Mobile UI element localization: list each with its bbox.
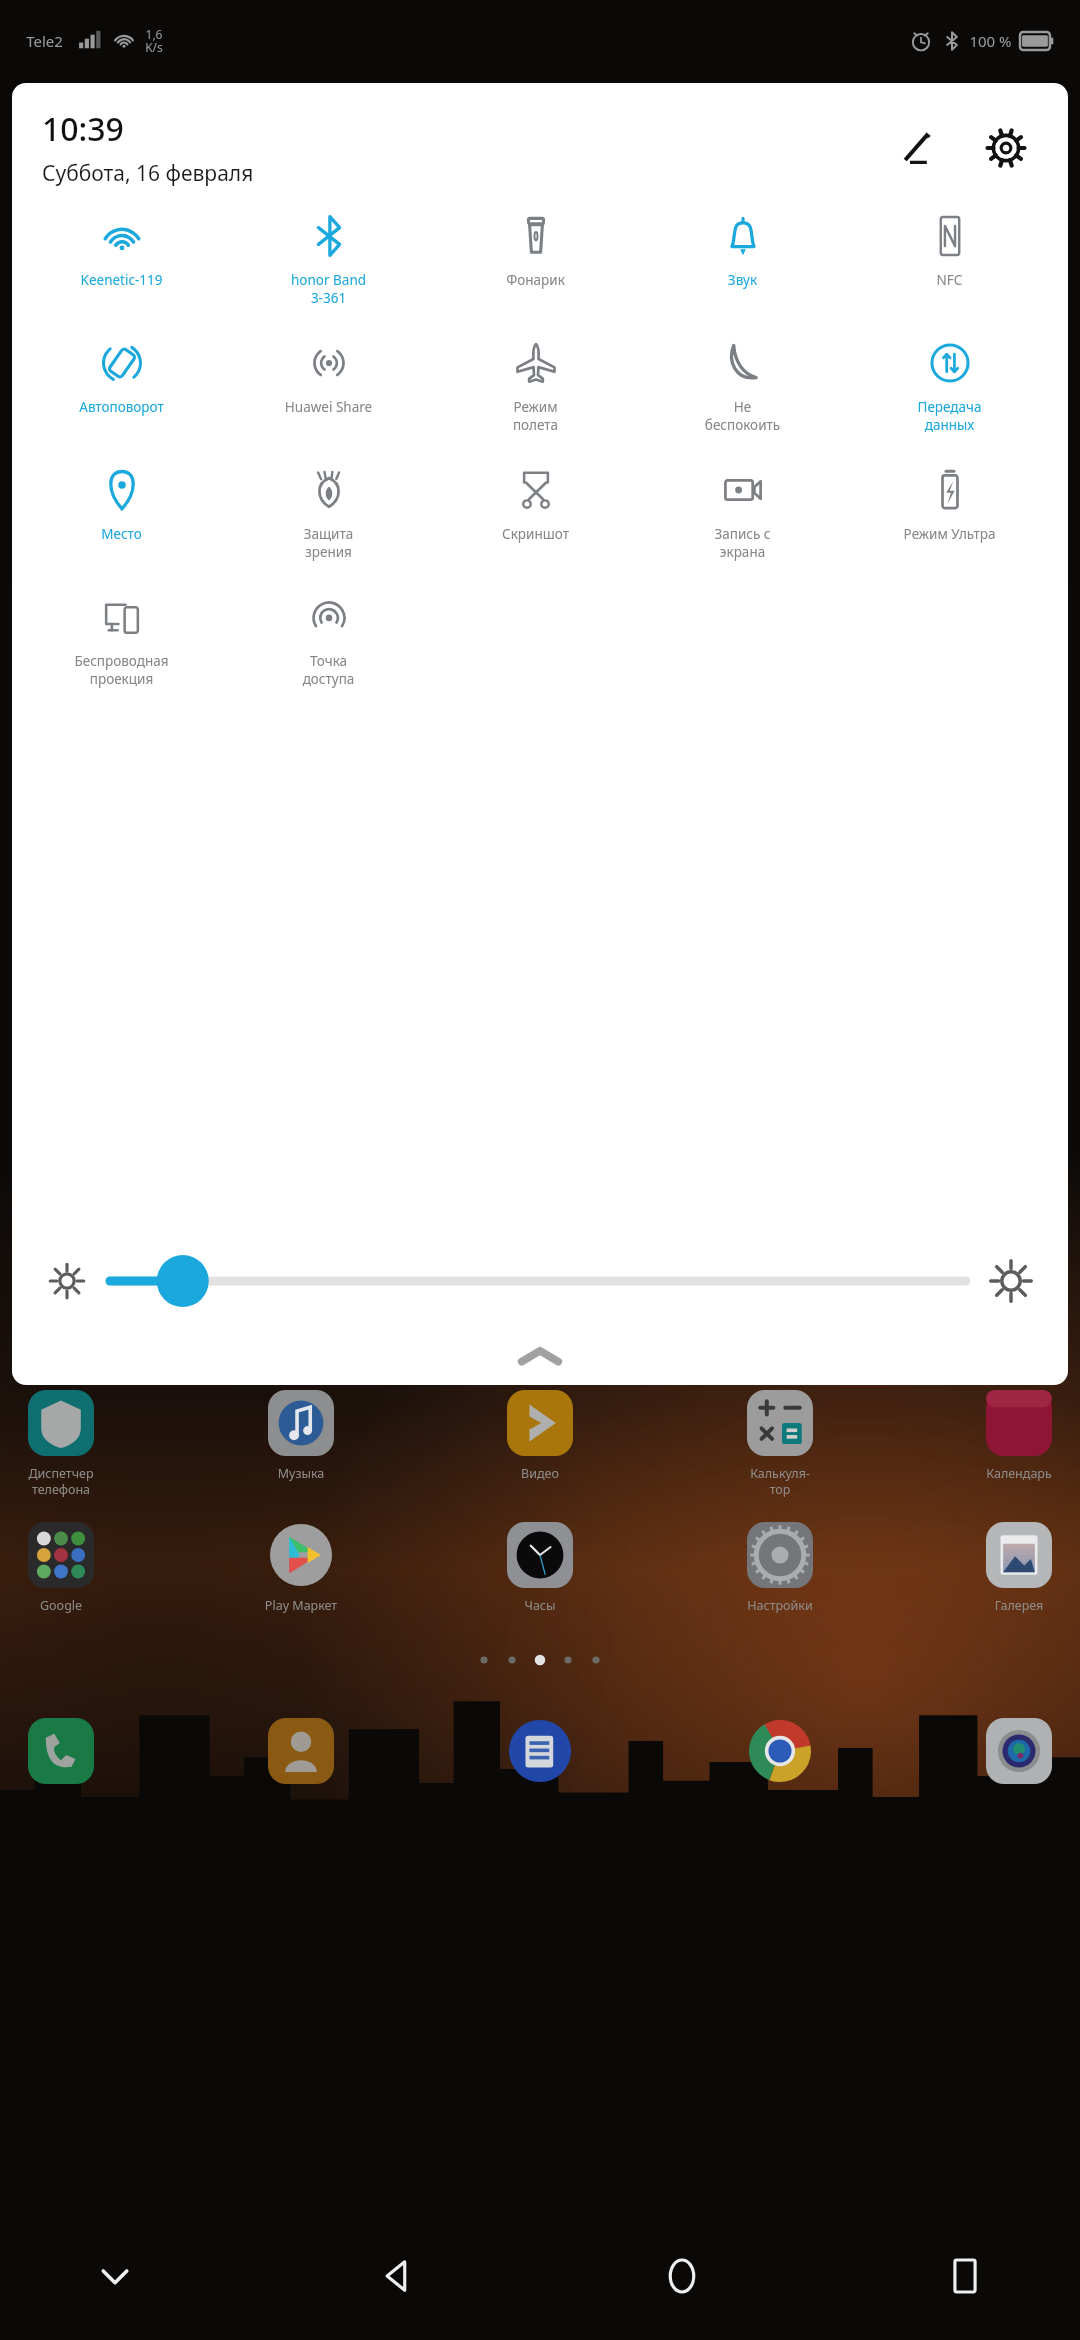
staticText: 100 % — [969, 31, 1012, 51]
staticText: Суббота, 16 февраля — [42, 159, 254, 188]
button[interactable]: Recents — [910, 2221, 1020, 2331]
staticText: NFC — [846, 271, 1053, 289]
staticText: Калькуля- тор — [735, 1465, 825, 1498]
button[interactable]: Hide — [60, 2221, 170, 2331]
button[interactable]: Звук — [639, 214, 846, 289]
button[interactable]: Автоповорот — [18, 341, 225, 416]
button[interactable] — [974, 1718, 1064, 1810]
button[interactable]: Настройки — [735, 1522, 825, 1614]
staticText: Звук — [639, 271, 846, 289]
staticText: Галерея — [974, 1597, 1064, 1614]
staticText: Видео — [495, 1465, 585, 1482]
staticText: 10:39 — [42, 107, 124, 151]
staticText: Место — [18, 525, 225, 543]
button[interactable]: Collapse — [12, 1329, 1068, 1385]
staticText: Tele2 — [26, 31, 63, 51]
staticText: Режим полета — [432, 398, 639, 434]
staticText: Беспроводная проекция — [18, 652, 225, 688]
button[interactable]: NFC — [846, 214, 1053, 289]
button[interactable]: Видео — [495, 1390, 585, 1482]
button[interactable]: Музыка — [256, 1390, 346, 1482]
staticText: Скриншот — [432, 525, 639, 543]
button[interactable]: Запись с экрана — [639, 468, 846, 561]
button[interactable]: Не беспокоить — [639, 341, 846, 434]
button[interactable]: Галерея — [974, 1522, 1064, 1614]
button[interactable]: Play Маркет — [256, 1522, 346, 1614]
button[interactable]: Часы — [495, 1522, 585, 1614]
button[interactable]: Передача данных — [846, 341, 1053, 434]
staticText: Не беспокоить — [639, 398, 846, 434]
staticText: Google — [16, 1597, 106, 1614]
button[interactable]: Edit — [886, 116, 950, 180]
button[interactable]: Календарь — [974, 1390, 1064, 1482]
staticText: Keenetic-119 — [18, 271, 225, 289]
button[interactable]: Huawei Share — [225, 341, 432, 416]
staticText — [256, 1793, 346, 1810]
staticText: Защита зрения — [225, 525, 432, 561]
button[interactable]: Место — [18, 468, 225, 543]
button[interactable] — [735, 1718, 825, 1810]
button[interactable]: Google — [16, 1522, 106, 1614]
button[interactable] — [16, 1718, 106, 1810]
button[interactable]: Keenetic-119 — [18, 214, 225, 289]
staticText: Режим Ультра — [846, 525, 1053, 543]
button[interactable]: Settings — [974, 116, 1038, 180]
button[interactable]: Режим полета — [432, 341, 639, 434]
button[interactable]: Защита зрения — [225, 468, 432, 561]
button[interactable]: Фонарик — [432, 214, 639, 289]
button[interactable]: honor Band 3-361 — [225, 214, 432, 307]
button[interactable]: Brightness — [110, 1253, 966, 1309]
staticText: Часы — [495, 1597, 585, 1614]
staticText: Автоповорот — [18, 398, 225, 416]
staticText: Play Маркет — [256, 1597, 346, 1614]
staticText: Точка доступа — [225, 652, 432, 688]
staticText: Музыка — [256, 1465, 346, 1482]
button[interactable]: Диспетчер телефона — [16, 1390, 106, 1498]
button[interactable]: Home — [627, 2221, 737, 2331]
staticText: Фонарик — [432, 271, 639, 289]
button[interactable] — [256, 1718, 346, 1810]
staticText: 1,6 K/s — [145, 26, 163, 56]
staticText: honor Band 3-361 — [225, 271, 432, 307]
button[interactable]: Беспроводная проекция — [18, 595, 225, 688]
staticText: Настройки — [735, 1597, 825, 1614]
button[interactable]: Back — [343, 2221, 453, 2331]
button[interactable]: Точка доступа — [225, 595, 432, 688]
staticText: Запись с экрана — [639, 525, 846, 561]
button[interactable]: Калькуля- тор — [735, 1390, 825, 1498]
staticText: Передача данных — [846, 398, 1053, 434]
button[interactable]: Режим Ультра — [846, 468, 1053, 543]
staticText: Диспетчер телефона — [16, 1465, 106, 1498]
staticText: Huawei Share — [225, 398, 432, 416]
staticText: Календарь — [974, 1465, 1064, 1482]
button[interactable] — [495, 1718, 585, 1810]
button[interactable]: Скриншот — [432, 468, 639, 543]
staticText — [16, 1793, 106, 1810]
